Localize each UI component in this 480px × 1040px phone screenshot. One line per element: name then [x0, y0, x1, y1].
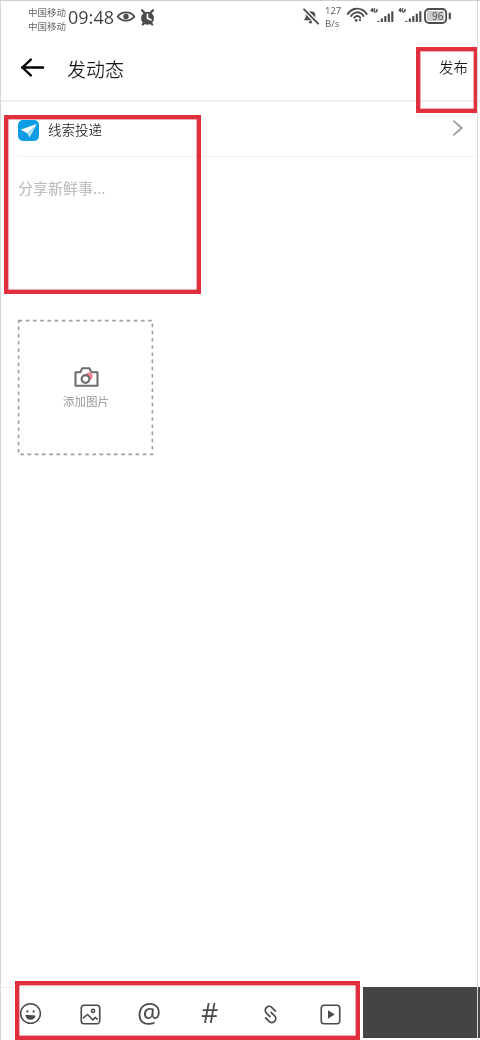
button[interactable]: 返回 [10, 45, 54, 89]
button[interactable]: 添加图片 [18, 320, 153, 455]
staticText: 线索投递 [48, 119, 102, 139]
staticText: 127 [325, 4, 342, 17]
staticText: 分享新鲜事... [18, 177, 106, 199]
staticText: 96 [432, 9, 444, 23]
staticText: 发布 [439, 56, 468, 77]
button[interactable]: 图片 [70, 994, 111, 1035]
staticText: 添加图片 [63, 393, 109, 410]
staticText: 中国移动 [28, 19, 67, 33]
button[interactable]: 链接 [250, 994, 291, 1035]
button[interactable]: 视频 [310, 994, 351, 1035]
button[interactable]: 线索投递 [0, 106, 480, 154]
staticText: B/s [325, 17, 340, 30]
staticText: 发动态 [67, 55, 125, 83]
button[interactable]: 发布 [426, 46, 476, 86]
staticText: @ [137, 994, 162, 1031]
button[interactable]: 分享新鲜事... [0, 157, 480, 297]
button[interactable]: 话题 [189, 992, 230, 1033]
staticText: 中国移动 [28, 5, 67, 19]
button[interactable]: 提到某人 [129, 992, 170, 1033]
button[interactable]: 表情 [10, 993, 51, 1034]
staticText: 09:48 [68, 5, 115, 30]
staticText: # [201, 994, 219, 1031]
